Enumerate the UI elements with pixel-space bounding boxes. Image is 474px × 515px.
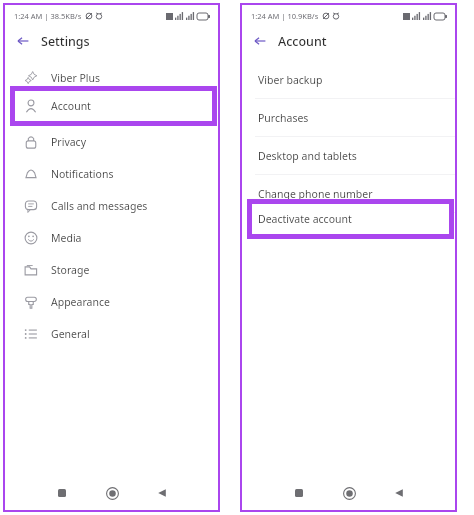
staticText: Privacy <box>51 135 87 149</box>
button[interactable]: Home <box>99 480 125 506</box>
button[interactable]: Deactivate account <box>247 199 454 239</box>
staticText: Deactivate account <box>258 212 352 226</box>
staticText: Storage <box>51 263 90 277</box>
button[interactable]: Back <box>386 480 412 506</box>
button[interactable]: Account <box>5 94 218 126</box>
button[interactable]: Appearance <box>5 286 218 318</box>
button[interactable]: Back <box>13 31 33 51</box>
staticText: Desktop and tablets <box>258 149 357 163</box>
button[interactable]: Viber backup <box>242 61 455 99</box>
staticText: Purchases <box>258 111 309 125</box>
staticText: Viber Plus <box>51 71 101 85</box>
staticText: Calls and messages <box>51 199 148 213</box>
button[interactable]: Privacy <box>5 126 218 158</box>
button[interactable]: Back <box>149 480 175 506</box>
button[interactable]: Change phone number <box>242 175 455 213</box>
staticText: Account <box>51 103 91 117</box>
button[interactable]: Desktop and tablets <box>242 137 455 175</box>
staticText: 1:24 AM | 38.5KB/s <box>14 11 82 21</box>
staticText: Appearance <box>51 295 110 309</box>
staticText: Account <box>51 99 91 113</box>
button[interactable]: Recent apps <box>286 480 312 506</box>
button[interactable]: Notifications <box>5 158 218 190</box>
staticText: Change phone number <box>258 187 373 201</box>
staticText: Viber backup <box>258 73 323 87</box>
staticText: Account <box>278 33 327 50</box>
button[interactable]: Account <box>10 86 217 126</box>
button[interactable]: Purchases <box>242 99 455 137</box>
button[interactable]: Calls and messages <box>5 190 218 222</box>
button[interactable]: Home <box>336 480 362 506</box>
button[interactable]: Media <box>5 222 218 254</box>
staticText: General <box>51 327 90 341</box>
staticText: Notifications <box>51 167 114 181</box>
button[interactable]: Back <box>250 31 270 51</box>
staticText: Media <box>51 231 82 245</box>
button[interactable]: Recent apps <box>49 480 75 506</box>
button[interactable]: Storage <box>5 254 218 286</box>
staticText: Deactivate account <box>258 225 352 239</box>
button[interactable]: Deactivate account <box>242 213 455 251</box>
button[interactable]: General <box>5 318 218 350</box>
button[interactable]: Viber Plus <box>5 62 218 94</box>
staticText: 1:24 AM | 10.9KB/s <box>251 11 319 21</box>
staticText: Settings <box>41 33 90 50</box>
